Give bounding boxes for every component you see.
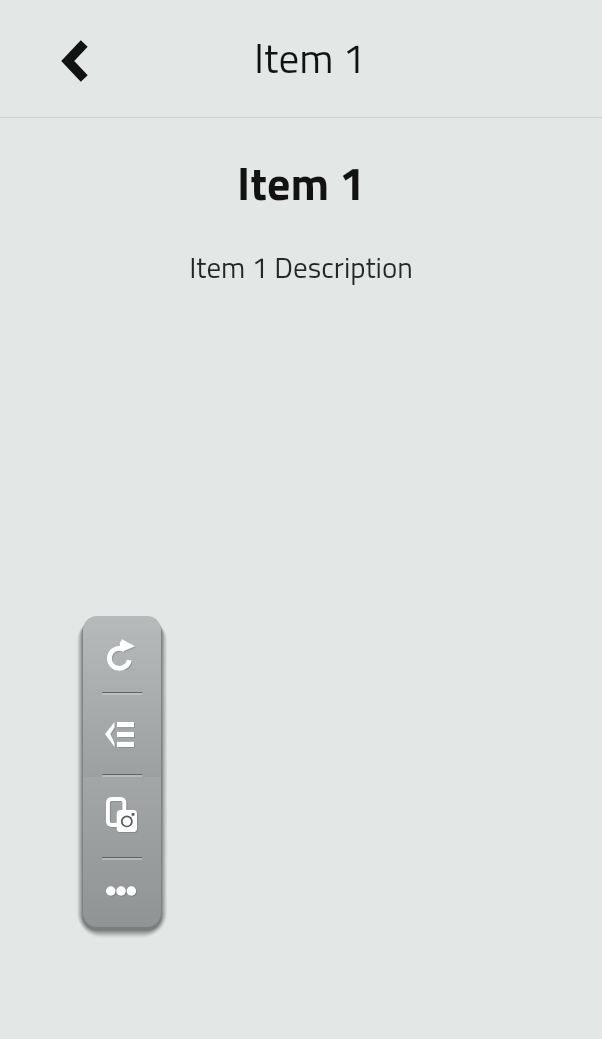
button[interactable]: Refresh [83, 616, 161, 692]
staticText: Item 1 Description [0, 245, 602, 289]
button[interactable]: Collapse menu [83, 695, 161, 774]
button[interactable]: More options [83, 860, 161, 927]
button[interactable]: Screenshot [83, 777, 161, 857]
staticText: Item 1 [254, 27, 366, 89]
staticText: Item 1 [0, 148, 602, 218]
button[interactable]: Back [46, 33, 102, 89]
